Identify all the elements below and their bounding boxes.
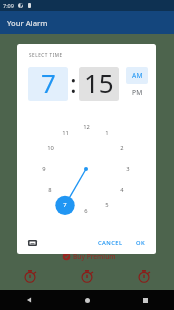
- staticText: 8: [48, 186, 52, 194]
- staticText: 2: [120, 144, 124, 152]
- staticText: 9: [42, 165, 46, 173]
- staticText: 11: [62, 129, 69, 137]
- staticText: 7: [63, 201, 67, 209]
- staticText: 5: [105, 201, 109, 209]
- staticText: :: [70, 66, 77, 100]
- staticText: 4: [120, 186, 124, 194]
- staticText: PM: [132, 88, 143, 97]
- button[interactable]: Timer: [22, 268, 38, 284]
- staticText: CANCEL: [98, 239, 123, 247]
- button[interactable]: AM: [126, 67, 148, 84]
- button[interactable]: 7: [28, 67, 68, 101]
- staticText: Buy Premium: [73, 252, 116, 261]
- staticText: 7:09: [3, 2, 14, 9]
- staticText: 6: [84, 207, 88, 215]
- staticText: AM: [132, 71, 143, 80]
- staticText: 3: [126, 165, 130, 173]
- button[interactable]: CANCEL: [95, 236, 126, 250]
- staticText: 15: [84, 67, 114, 99]
- button[interactable]: Back: [20, 291, 38, 309]
- staticText: 12: [83, 123, 90, 131]
- button[interactable]: PM: [126, 84, 148, 101]
- button[interactable]: Stopwatch: [136, 268, 152, 284]
- button[interactable]: 15: [79, 67, 119, 101]
- button[interactable]: Recents: [136, 291, 154, 309]
- button[interactable]: OK: [133, 236, 149, 250]
- staticText: Your Alarm: [7, 18, 48, 28]
- staticText: 1: [105, 129, 109, 137]
- staticText: SELECT TIME: [29, 52, 63, 58]
- staticText: OK: [136, 239, 146, 247]
- button[interactable]: Home: [78, 291, 96, 309]
- button[interactable]: Switch to text input: [24, 235, 40, 251]
- button[interactable]: Alarm: [79, 268, 95, 284]
- button[interactable]: Buy Premium: [62, 252, 116, 261]
- staticText: 7: [41, 67, 56, 99]
- staticText: 10: [47, 144, 54, 152]
